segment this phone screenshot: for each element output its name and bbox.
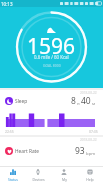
staticText: 1596	[27, 32, 76, 61]
button[interactable]: My	[51, 167, 77, 183]
button[interactable]: Status	[0, 167, 25, 183]
staticText: Heart Rate	[15, 148, 40, 155]
staticText: Status	[8, 177, 18, 182]
staticText: GOAL 8000	[43, 63, 61, 68]
staticText: Devices	[32, 177, 45, 182]
staticText: 0.6 mile / 60 Kcal	[34, 54, 69, 60]
staticText: 22:55	[5, 129, 14, 134]
staticText: 2018-08-22	[80, 138, 97, 142]
staticText: 40	[81, 95, 91, 107]
staticText: bpm	[85, 151, 96, 157]
staticText: 10:13	[1, 1, 13, 7]
staticText: My	[62, 177, 67, 182]
staticText: 2018-08-22	[80, 91, 97, 95]
button[interactable]: 2018-08-22	[0, 90, 103, 135]
staticText: 93	[75, 145, 85, 157]
staticText: н	[76, 101, 81, 107]
button[interactable]: Help	[77, 167, 103, 183]
staticText: 8	[71, 95, 76, 107]
staticText: Help	[86, 177, 94, 182]
staticText: 07:35	[89, 129, 98, 134]
button[interactable]: Devices	[25, 167, 51, 183]
button[interactable]: 2018-08-22	[0, 137, 103, 166]
staticText: Sleep	[15, 98, 28, 105]
staticText: м	[91, 101, 96, 107]
